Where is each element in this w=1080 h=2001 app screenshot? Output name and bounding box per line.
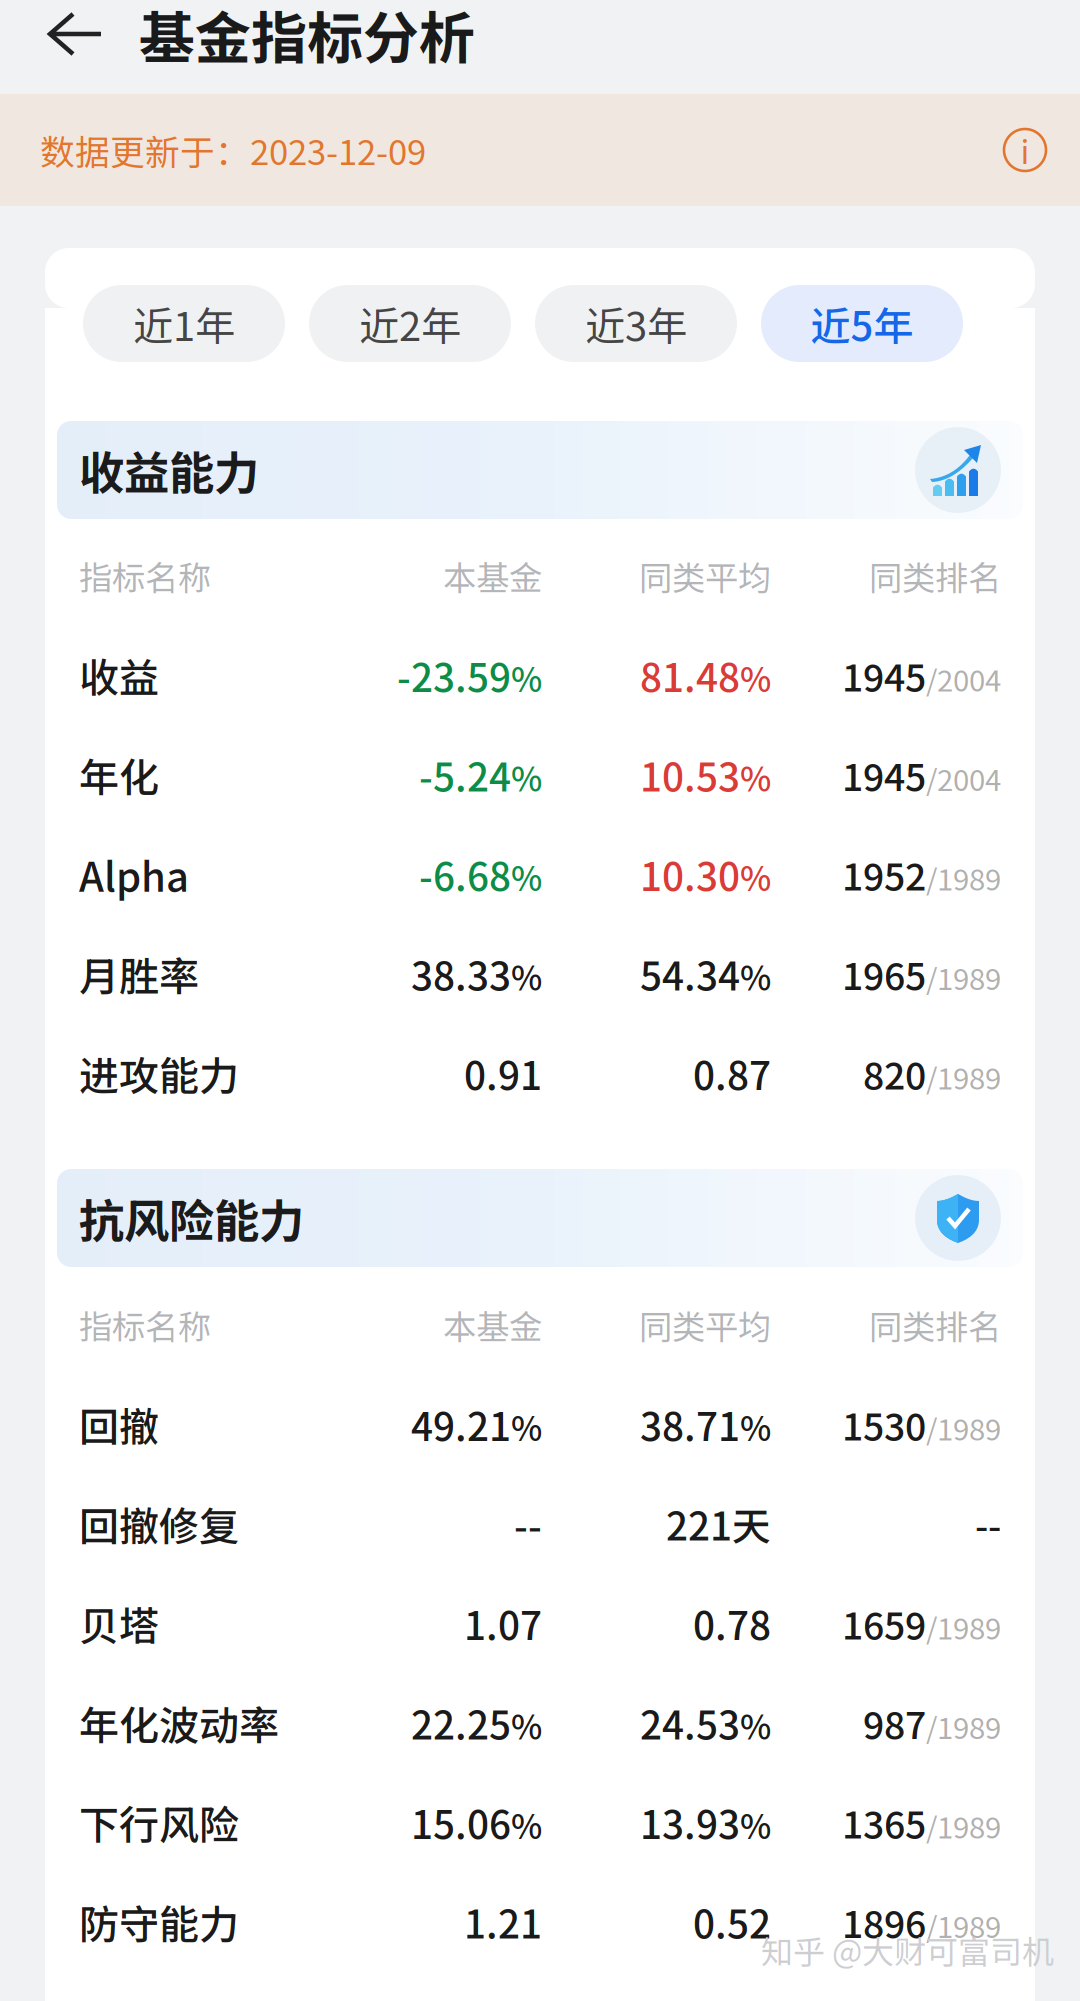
staticText: /1989	[926, 1055, 1001, 1098]
staticText: 10.30	[640, 846, 740, 902]
staticText: 指标名称	[79, 552, 211, 600]
staticText: 0.52	[693, 1894, 771, 1950]
staticText: %	[740, 653, 771, 702]
staticText: 1945	[842, 648, 926, 702]
staticText: %	[511, 852, 542, 901]
staticText: 近2年	[359, 294, 461, 352]
staticText: %	[511, 1402, 542, 1451]
staticText: /1989	[926, 1904, 1001, 1946]
staticText: %	[511, 653, 542, 702]
staticText: 回撤	[79, 1395, 159, 1453]
staticText: 81.48	[640, 647, 740, 703]
staticText: %	[740, 852, 771, 901]
staticText: 月胜率	[79, 945, 199, 1003]
staticText: 近1年	[133, 294, 235, 352]
staticText: 年化	[79, 746, 159, 804]
staticText: 1896	[842, 1895, 926, 1949]
staticText: Alpha	[79, 845, 189, 903]
staticText: 820	[863, 1046, 926, 1100]
staticText: 同类排名	[869, 1301, 1001, 1349]
staticText: /1989	[926, 1406, 1001, 1449]
staticText: %	[740, 952, 771, 1000]
staticText: 49.21	[411, 1396, 511, 1452]
staticText: 1945	[842, 748, 926, 802]
staticText: 本基金	[443, 552, 542, 600]
staticText: /2004	[926, 657, 1001, 700]
button[interactable]: 近5年	[761, 285, 963, 362]
staticText: 13.93	[640, 1794, 740, 1850]
staticText: %	[511, 1701, 542, 1749]
staticText: 指标名称	[79, 1301, 211, 1349]
staticText: 221天	[666, 1496, 771, 1552]
staticText: 38.33	[411, 946, 511, 1002]
staticText: 同类平均	[639, 1301, 771, 1349]
staticText: /1989	[926, 1705, 1001, 1747]
staticText: /1989	[926, 956, 1001, 998]
button[interactable]: Back	[0, 0, 139, 68]
staticText: 1530	[842, 1397, 926, 1451]
staticText: 收益	[79, 646, 159, 704]
staticText: 0.91	[464, 1045, 542, 1101]
staticText: 数据更新于：2023-12-09	[40, 125, 426, 175]
staticText: 下行风险	[79, 1793, 239, 1851]
staticText: 同类排名	[869, 552, 1001, 600]
staticText: i	[1020, 127, 1029, 173]
staticText: 38.71	[640, 1396, 740, 1452]
staticText: 0.78	[693, 1595, 771, 1651]
staticText: 24.53	[640, 1695, 740, 1751]
staticText: %	[511, 952, 542, 1000]
staticText: 贝塔	[79, 1594, 159, 1652]
staticText: 近5年	[810, 294, 913, 352]
staticText: --	[514, 1496, 542, 1552]
staticText: 收益能力	[79, 437, 259, 503]
button[interactable]: 近3年	[535, 285, 737, 362]
staticText: 0.87	[693, 1045, 771, 1101]
staticText: -5.24	[419, 747, 511, 803]
button[interactable]: 近1年	[83, 285, 285, 362]
staticText: 回撤修复	[79, 1495, 239, 1553]
staticText: 987	[863, 1696, 926, 1750]
staticText: 基金指标分析	[139, 0, 475, 75]
staticText: 1.07	[464, 1595, 542, 1651]
staticText: 1952	[842, 847, 926, 901]
staticText: 1365	[842, 1795, 926, 1849]
staticText: %	[740, 1701, 771, 1749]
button[interactable]: Info	[1004, 129, 1046, 171]
staticText: 抗风险能力	[79, 1185, 304, 1251]
staticText: 进攻能力	[79, 1044, 239, 1102]
staticText: 1965	[842, 947, 926, 1001]
staticText: 1.21	[464, 1894, 542, 1950]
staticText: 1659	[842, 1596, 926, 1650]
staticText: 10.53	[640, 747, 740, 803]
staticText: /1989	[926, 1605, 1001, 1648]
staticText: /1989	[926, 1804, 1001, 1847]
staticText: --	[975, 1497, 1001, 1551]
staticText: /1989	[926, 856, 1001, 899]
staticText: %	[740, 1800, 771, 1849]
staticText: %	[511, 1800, 542, 1849]
staticText: 54.34	[640, 946, 740, 1002]
staticText: 本基金	[443, 1301, 542, 1349]
staticText: %	[740, 1402, 771, 1451]
staticText: %	[740, 753, 771, 801]
staticText: %	[511, 753, 542, 801]
staticText: -23.59	[397, 647, 511, 703]
staticText: 22.25	[411, 1695, 511, 1751]
staticText: 知乎 @大财可富司机	[761, 1927, 1054, 1973]
staticText: 年化波动率	[79, 1694, 279, 1752]
staticText: /2004	[926, 757, 1001, 799]
staticText: 同类平均	[639, 552, 771, 600]
staticText: 防守能力	[79, 1893, 239, 1951]
staticText: 近3年	[585, 294, 687, 352]
staticText: -6.68	[419, 846, 511, 902]
staticText: 15.06	[411, 1794, 511, 1850]
button[interactable]: 近2年	[309, 285, 511, 362]
